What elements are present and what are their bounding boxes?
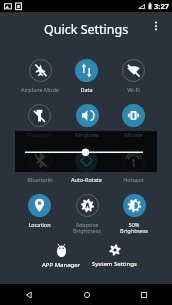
button[interactable]: Hotspot xyxy=(110,144,157,189)
button[interactable]: Location xyxy=(16,189,63,234)
button[interactable]: More options xyxy=(146,16,166,36)
staticText: 3:27 xyxy=(154,1,169,11)
button[interactable]: Wi-Fi xyxy=(110,54,157,99)
button[interactable]: Ringtone xyxy=(63,99,110,144)
staticText: Flashlight xyxy=(27,131,52,138)
button[interactable]: Bluetooth xyxy=(16,144,63,189)
staticText: 50% Brightness xyxy=(120,221,148,234)
staticText: System Settings xyxy=(92,260,137,268)
staticText: Ringtone xyxy=(75,131,99,138)
staticText: Data xyxy=(80,86,93,93)
staticText: Airplane Mode xyxy=(21,86,59,93)
button[interactable]: System Settings xyxy=(86,244,142,274)
staticText: Bluetooth xyxy=(27,176,53,183)
staticText: Vibrate xyxy=(124,131,143,138)
button[interactable]: APP Manager xyxy=(33,244,89,274)
staticText: Hotspot xyxy=(123,176,144,183)
staticText: Wi-Fi xyxy=(127,86,140,93)
button[interactable]: Adaptive Brightness xyxy=(63,189,110,234)
staticText: Auto-Rotate xyxy=(71,176,102,183)
button[interactable]: Airplane Mode xyxy=(16,54,63,99)
staticText: Location xyxy=(28,221,51,228)
button[interactable]: Auto-Rotate xyxy=(63,144,110,189)
button[interactable]: Vibrate xyxy=(110,99,157,144)
button[interactable]: Flashlight xyxy=(16,99,63,144)
staticText: Quick Settings xyxy=(44,21,129,38)
button[interactable]: 50% Brightness xyxy=(110,189,157,234)
button[interactable]: Recent apps xyxy=(115,284,172,305)
staticText: APP Manager xyxy=(42,261,81,269)
button[interactable]: Home xyxy=(58,284,115,305)
staticText: Adaptive Brightness xyxy=(73,221,101,234)
button[interactable]: Data xyxy=(63,54,110,99)
button[interactable]: Back xyxy=(0,284,58,305)
